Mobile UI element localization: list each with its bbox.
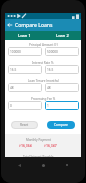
- button[interactable]: 48: [8, 83, 42, 92]
- staticText: 100000: [10, 50, 21, 54]
- button[interactable]: Recents: [61, 159, 73, 171]
- staticText: Principal Amount (₹): [29, 43, 58, 47]
- button[interactable]: 500000: [45, 47, 79, 56]
- staticText: Compare Loans: [15, 22, 53, 29]
- button[interactable]: 48: [45, 83, 79, 92]
- staticText: 1: [47, 104, 49, 108]
- staticText: 16.5: [47, 68, 54, 72]
- staticText: ₹16,364: [19, 143, 32, 148]
- button[interactable]: Loan 2: [43, 31, 81, 40]
- staticText: 16.5: [10, 68, 17, 72]
- staticText: 48: [47, 86, 51, 90]
- button[interactable]: Back: [13, 159, 25, 171]
- staticText: Compare: [54, 123, 68, 127]
- button[interactable]: Compare: [47, 121, 75, 129]
- staticText: 48: [10, 86, 14, 90]
- staticText: Monthly Payment: [26, 138, 51, 142]
- button[interactable]: Loan 1: [5, 31, 43, 40]
- button[interactable]: 16.5: [45, 65, 79, 74]
- button[interactable]: Reset: [11, 121, 38, 129]
- button[interactable]: Back: [5, 20, 15, 30]
- staticText: 500000: [47, 50, 58, 54]
- staticText: Interest Rate %: [32, 61, 54, 65]
- button[interactable]: 0: [8, 101, 42, 110]
- staticText: Reset: [20, 123, 29, 127]
- staticText: Loan Tenure (months): [28, 79, 59, 83]
- button[interactable]: 16.5: [8, 65, 42, 74]
- staticText: Processing Fee %: [31, 97, 56, 101]
- staticText: ₹16,347: [44, 143, 57, 148]
- button[interactable]: 1: [45, 101, 79, 110]
- staticText: Total Interest Payable: [23, 155, 54, 157]
- staticText: Loan 2: [56, 33, 69, 38]
- staticText: 0: [10, 104, 12, 108]
- staticText: Loan 1: [18, 33, 31, 38]
- button[interactable]: 100000: [8, 47, 42, 56]
- button[interactable]: Home: [37, 159, 49, 171]
